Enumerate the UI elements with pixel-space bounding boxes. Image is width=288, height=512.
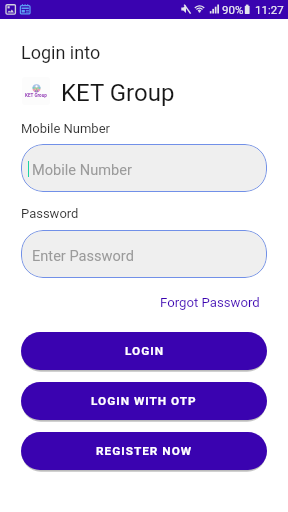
other: Battery bbox=[244, 4, 251, 16]
button[interactable]: LOGIN WITH OTP bbox=[21, 382, 267, 420]
other: Wi-Fi bbox=[195, 3, 205, 15]
other: Sound muted bbox=[181, 4, 191, 15]
staticText: Password bbox=[21, 206, 79, 221]
button[interactable]: REGISTER NOW bbox=[21, 432, 267, 470]
staticText: 11:27 bbox=[255, 3, 284, 16]
staticText: REGISTER NOW bbox=[96, 444, 193, 458]
staticText: Mobile Number bbox=[21, 121, 110, 136]
staticText: 90% bbox=[222, 3, 244, 16]
staticText: LOGIN WITH OTP bbox=[91, 394, 197, 408]
staticText: KET Group bbox=[25, 93, 47, 98]
staticText: LOGIN bbox=[125, 344, 164, 358]
button[interactable]: Mobile Number bbox=[21, 144, 267, 192]
staticText: Login into bbox=[21, 42, 101, 63]
other: Signal strength bbox=[209, 4, 220, 15]
button[interactable]: Enter Password bbox=[21, 230, 267, 278]
button[interactable]: LOGIN bbox=[21, 332, 267, 370]
staticText: Mobile Number bbox=[32, 161, 132, 178]
staticText: Enter Password bbox=[32, 247, 134, 264]
button[interactable]: Forgot Password bbox=[160, 295, 288, 310]
staticText: KET Group bbox=[61, 79, 175, 107]
